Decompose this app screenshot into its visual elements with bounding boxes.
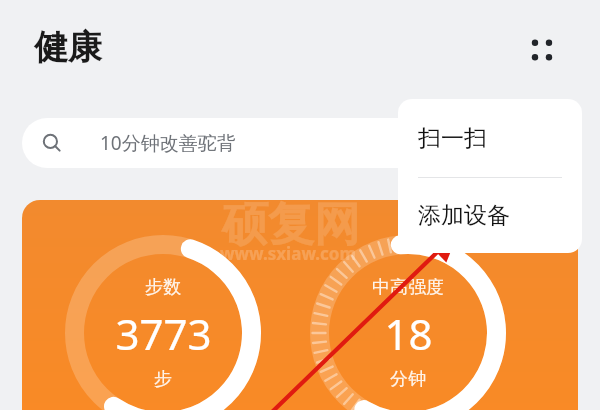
staticText: 添加设备 [418, 201, 510, 230]
staticText: 步 [154, 368, 172, 391]
staticText: 分钟 [390, 368, 426, 391]
staticText: 18 [384, 305, 433, 362]
staticText: 10分钟改善驼背 [100, 130, 236, 156]
button[interactable]: 硕复网 [22, 200, 578, 410]
staticText: 健康 [34, 26, 102, 69]
button[interactable]: 10分钟改善驼背 [22, 118, 484, 168]
button[interactable]: 扫一扫 [398, 99, 582, 177]
staticText: 硕复网 [222, 200, 360, 254]
button[interactable]: 更多 [516, 24, 568, 76]
staticText: 扫一扫 [418, 124, 487, 153]
button[interactable]: 添加设备 [398, 178, 582, 253]
staticText: www.sxiaw.com [220, 242, 356, 265]
staticText: 中高强度 [372, 276, 444, 299]
staticText: 步数 [145, 276, 181, 299]
staticText: 3773 [115, 305, 212, 362]
